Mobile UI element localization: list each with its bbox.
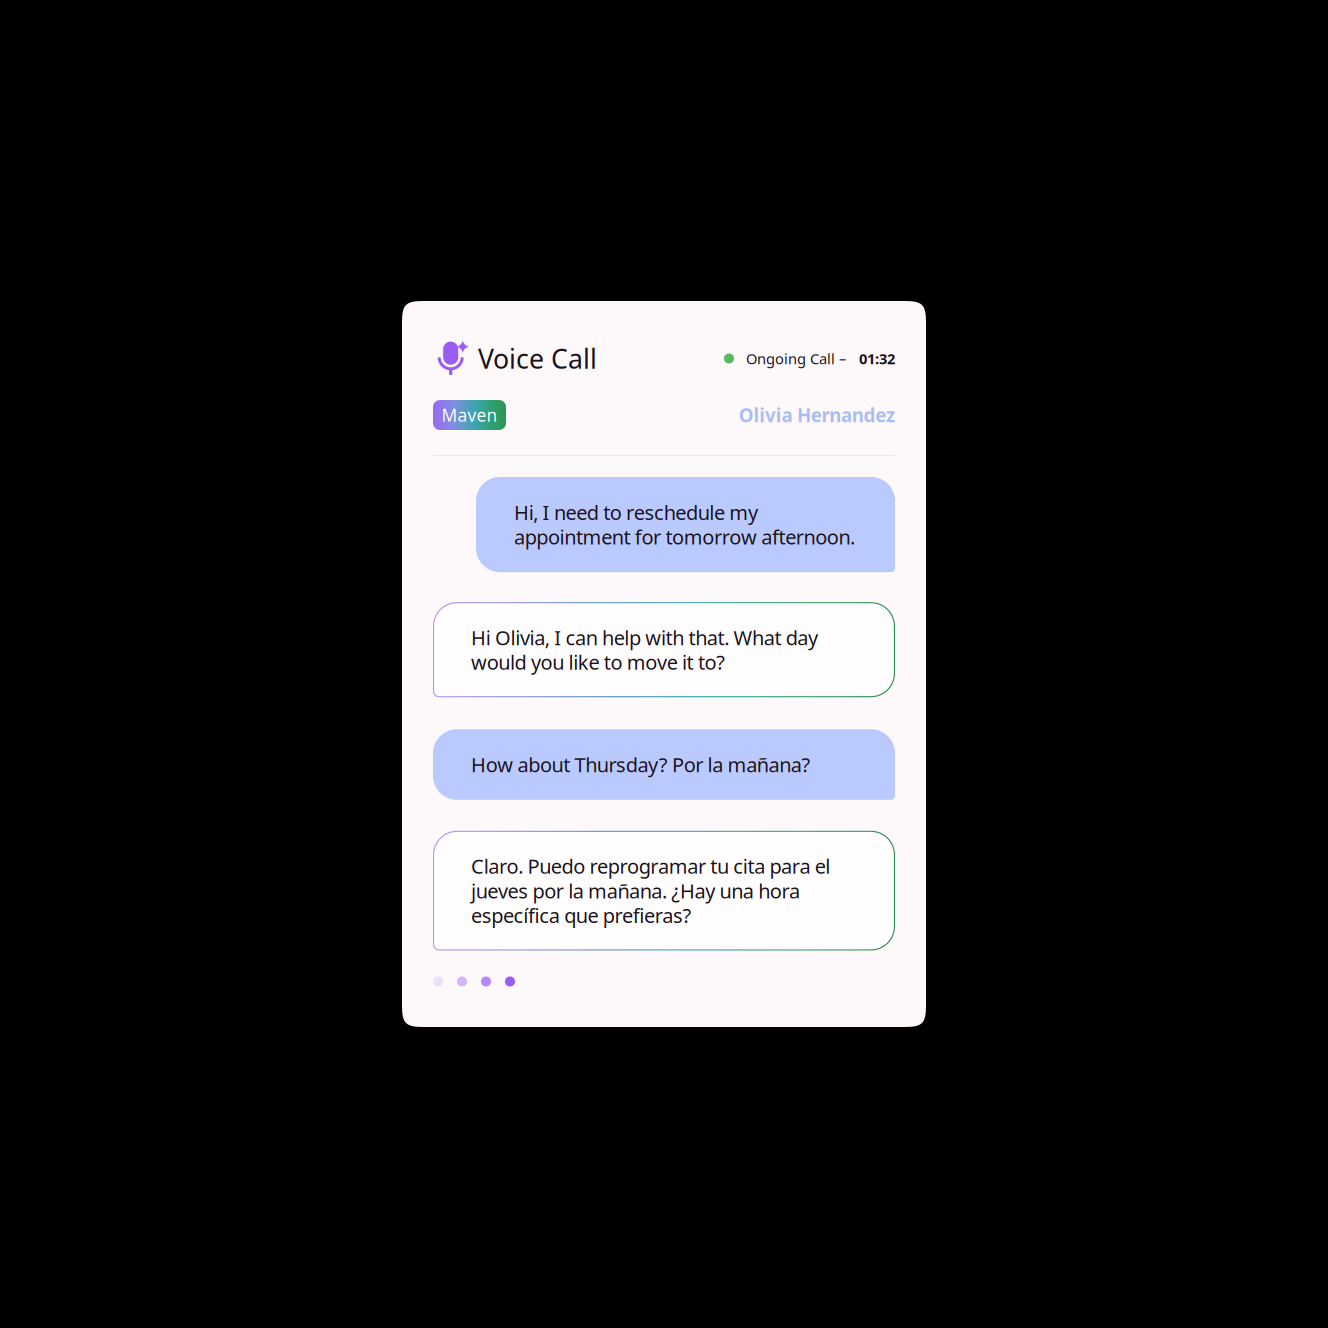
button[interactable]: Hi, I need to reschedule my appointment … bbox=[476, 477, 895, 572]
button[interactable]: Ongoing Call – bbox=[724, 349, 895, 368]
staticText: Voice Call bbox=[478, 341, 597, 376]
staticText: Ongoing Call – bbox=[746, 349, 846, 368]
staticText: Olivia Hernandez bbox=[739, 403, 895, 427]
button[interactable]: Page 4 bbox=[505, 976, 515, 986]
button[interactable]: How about Thursday? Por la mañana? bbox=[433, 729, 895, 800]
button[interactable]: Page 1 bbox=[433, 976, 443, 986]
staticText: Hi Olivia, I can help with that. What da… bbox=[471, 624, 818, 675]
staticText: How about Thursday? Por la mañana? bbox=[471, 751, 810, 778]
button[interactable]: Hi Olivia, I can help with that. What da… bbox=[433, 602, 895, 697]
staticText: Hi, I need to reschedule my appointment … bbox=[514, 499, 855, 550]
staticText: Maven bbox=[441, 403, 497, 426]
button[interactable]: Microphone bbox=[433, 340, 469, 376]
staticText: 01:32 bbox=[859, 349, 895, 368]
button[interactable]: Maven bbox=[433, 400, 506, 430]
button[interactable]: Claro. Puedo reprogramar tu cita para el… bbox=[433, 831, 895, 950]
staticText: Claro. Puedo reprogramar tu cita para el… bbox=[471, 853, 830, 928]
button[interactable]: Page 2 bbox=[457, 976, 467, 986]
button[interactable]: Page 3 bbox=[481, 976, 491, 986]
